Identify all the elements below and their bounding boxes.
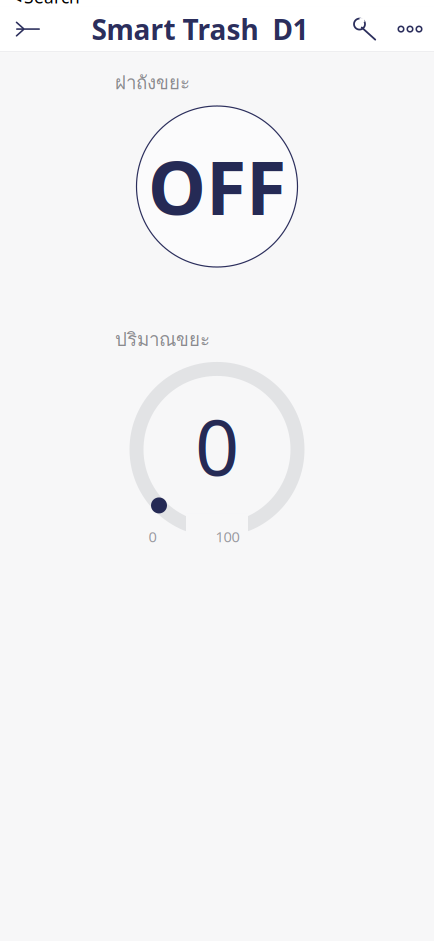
- staticText: ฝาถังขยะ: [115, 68, 190, 97]
- staticText: 0: [148, 527, 156, 546]
- button[interactable]: More options: [386, 6, 434, 52]
- staticText: 0: [195, 394, 239, 497]
- staticText: Smart Trash D1: [91, 10, 308, 48]
- staticText: 100: [215, 527, 239, 546]
- button[interactable]: OFF: [136, 106, 297, 267]
- button[interactable]: Settings: [344, 6, 386, 52]
- button[interactable]: Back: [0, 6, 56, 52]
- staticText: OFF: [148, 138, 286, 235]
- staticText: Search: [24, 0, 80, 8]
- staticText: ◀: [12, 0, 21, 3]
- staticText: ปริมาณขยะ: [115, 325, 210, 354]
